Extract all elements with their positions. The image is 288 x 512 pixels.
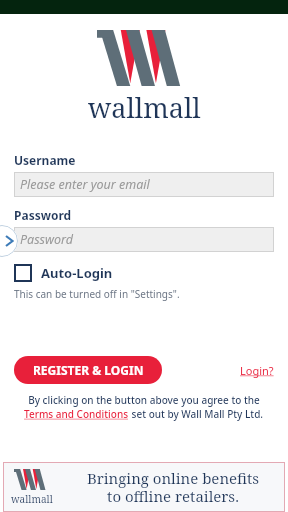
- staticText: REGISTER & LOGIN: [33, 362, 144, 378]
- staticText: Password: [14, 207, 72, 223]
- staticText: By clicking on the button above you agre…: [14, 393, 274, 407]
- button[interactable]: wallmall: [3, 462, 285, 512]
- staticText: Bringing online benefits to offline reta…: [61, 468, 285, 507]
- staticText: Please enter your email: [20, 176, 150, 193]
- button[interactable]: Login?: [240, 363, 274, 378]
- button[interactable]: Password: [14, 227, 274, 252]
- button[interactable]: REGISTER & LOGIN: [14, 356, 162, 384]
- button[interactable]: Terms and Conditions: [24, 407, 129, 421]
- button[interactable]: Auto-Login: [14, 264, 113, 282]
- staticText: This can be turned off in "Settings".: [14, 287, 180, 301]
- staticText: Login?: [240, 363, 274, 378]
- staticText: set out by Wall Mall Pty Ltd.: [129, 407, 264, 421]
- button[interactable]: Open menu: [0, 225, 18, 257]
- staticText: Auto-Login: [41, 264, 113, 282]
- button[interactable]: Please enter your email: [14, 172, 274, 197]
- staticText: Username: [14, 152, 76, 168]
- staticText: Password: [20, 231, 74, 248]
- staticText: wallmall: [11, 492, 53, 506]
- staticText: wallmall: [88, 89, 201, 122]
